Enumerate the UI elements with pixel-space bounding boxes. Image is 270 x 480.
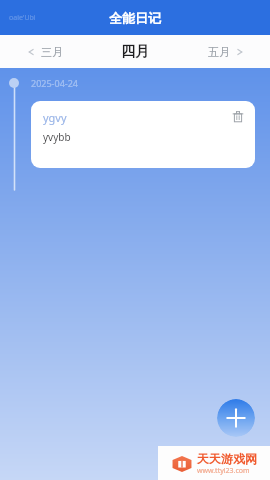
staticText: 天天游戏网	[197, 451, 257, 466]
staticText: 2025-04-24	[31, 77, 78, 89]
staticText: 全能日记	[109, 10, 161, 26]
staticText: 四月	[121, 43, 149, 61]
button[interactable]: 五月	[180, 45, 270, 59]
staticText: oaie'Ubi	[9, 13, 36, 23]
staticText: 五月	[208, 45, 230, 59]
button[interactable]: Add new diary entry	[217, 399, 255, 437]
button[interactable]: Delete entry	[230, 108, 246, 124]
button[interactable]: 三月	[0, 45, 90, 59]
button[interactable]: ygvy	[31, 101, 255, 168]
staticText: yvybb	[43, 130, 71, 144]
button[interactable]: 四月	[90, 43, 180, 61]
staticText: 三月	[41, 45, 63, 59]
staticText: www.ttyl23.com	[197, 466, 250, 476]
staticText: ygvy	[43, 110, 67, 125]
